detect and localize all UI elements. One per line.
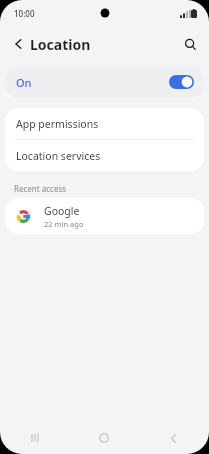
button[interactable]: Search bbox=[177, 31, 203, 57]
staticText: Recent access bbox=[14, 183, 67, 194]
staticText: 22 min ago bbox=[44, 219, 84, 229]
button[interactable]: Back bbox=[6, 31, 32, 57]
button[interactable]: Location services bbox=[5, 140, 204, 171]
button[interactable]: Google bbox=[5, 198, 204, 234]
button[interactable]: On bbox=[5, 66, 204, 98]
staticText: App permissions bbox=[16, 117, 99, 131]
staticText: 10:00 bbox=[14, 8, 35, 19]
staticText: Location services bbox=[16, 149, 101, 163]
button[interactable]: Recent apps bbox=[0, 422, 69, 454]
button[interactable]: Back bbox=[139, 422, 209, 454]
button[interactable]: Home bbox=[69, 422, 139, 454]
staticText: Location bbox=[30, 35, 91, 54]
button[interactable]: App permissions bbox=[5, 108, 204, 139]
staticText: Google bbox=[44, 204, 80, 218]
staticText: On bbox=[16, 75, 32, 90]
